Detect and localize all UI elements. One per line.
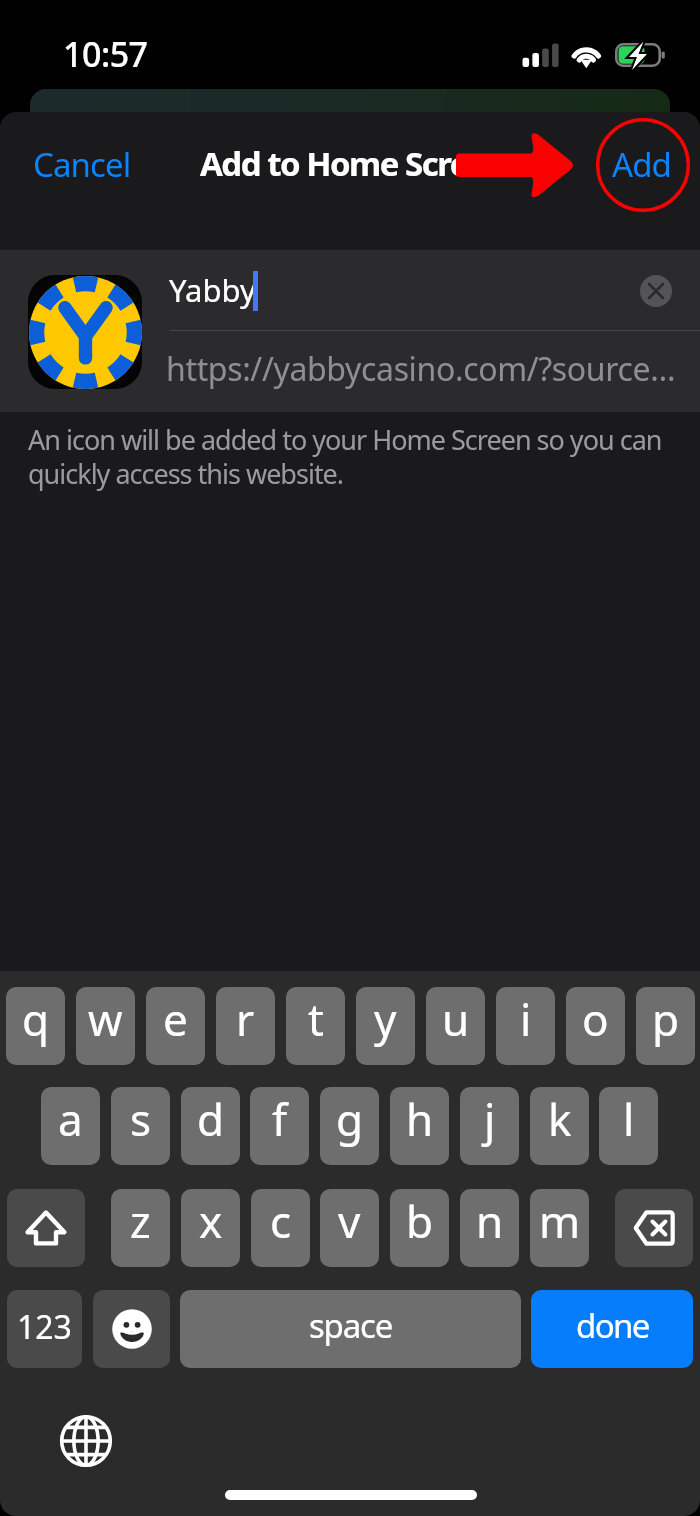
button[interactable]: y [356,987,415,1065]
staticText: i [520,989,532,1049]
staticText: e [163,989,188,1049]
button[interactable]: done [531,1290,693,1368]
button[interactable]: v [320,1189,379,1267]
staticText: An icon will be added to your Home Scree… [28,421,682,492]
staticText: Add to Home Screen [200,141,507,186]
staticText: z [130,1191,151,1251]
button[interactable]: 123 [7,1290,82,1368]
button[interactable]: c [251,1189,310,1267]
button[interactable]: p [636,987,695,1065]
button[interactable]: o [566,987,625,1065]
staticText: d [197,1089,225,1149]
button[interactable]: Add [596,128,687,201]
button[interactable]: w [76,987,135,1065]
staticText: r [236,989,255,1049]
button[interactable]: t [286,987,345,1065]
button[interactable]: i [496,987,555,1065]
staticText: t [308,989,324,1049]
staticText: space [309,1303,393,1348]
button[interactable]: space [180,1290,521,1368]
staticText: g [336,1089,364,1149]
button[interactable]: Clear text [640,275,672,307]
button[interactable]: q [6,987,65,1065]
button[interactable]: Backspace [615,1189,693,1267]
staticText: 123 [17,1305,72,1349]
button[interactable]: l [599,1087,658,1165]
button[interactable]: Change keyboard [56,1411,116,1471]
staticText: h [406,1089,434,1149]
staticText: s [130,1089,152,1149]
staticText: o [582,989,609,1049]
button[interactable]: j [460,1087,519,1165]
staticText: w [88,989,123,1049]
button[interactable]: z [111,1189,170,1267]
button[interactable]: h [390,1087,449,1165]
staticText: v [338,1191,361,1251]
staticText: n [476,1191,504,1251]
staticText: y [374,989,397,1049]
staticText: Cancel [33,142,131,187]
staticText: l [623,1089,635,1149]
button[interactable]: n [460,1189,519,1267]
staticText: k [548,1089,572,1149]
button[interactable]: g [320,1087,379,1165]
button[interactable]: d [181,1087,240,1165]
button[interactable]: Emoji [93,1290,170,1368]
staticText: j [484,1089,496,1149]
staticText: done [576,1303,649,1348]
staticText: a [58,1089,83,1149]
staticText: q [22,989,50,1049]
button[interactable]: r [216,987,275,1065]
button[interactable]: f [250,1087,309,1165]
button[interactable]: a [41,1087,100,1165]
staticText: 10:57 [63,31,148,77]
staticText: https://yabbycasino.com/?source… [166,347,676,391]
staticText: f [272,1089,288,1149]
button[interactable]: u [426,987,485,1065]
staticText: m [539,1191,581,1251]
button[interactable]: Cancel [17,128,147,201]
button[interactable]: s [111,1087,170,1165]
staticText: Yabby [169,269,256,311]
staticText: c [270,1191,292,1251]
staticText: u [442,989,470,1049]
button[interactable]: b [390,1189,449,1267]
staticText: b [406,1191,434,1251]
button[interactable]: k [530,1087,589,1165]
button[interactable]: Shift [7,1189,85,1267]
button[interactable]: m [530,1189,589,1267]
button[interactable]: e [146,987,205,1065]
staticText: p [652,989,680,1049]
staticText: Add [612,142,671,187]
button[interactable]: x [181,1189,240,1267]
staticText: x [199,1191,223,1251]
